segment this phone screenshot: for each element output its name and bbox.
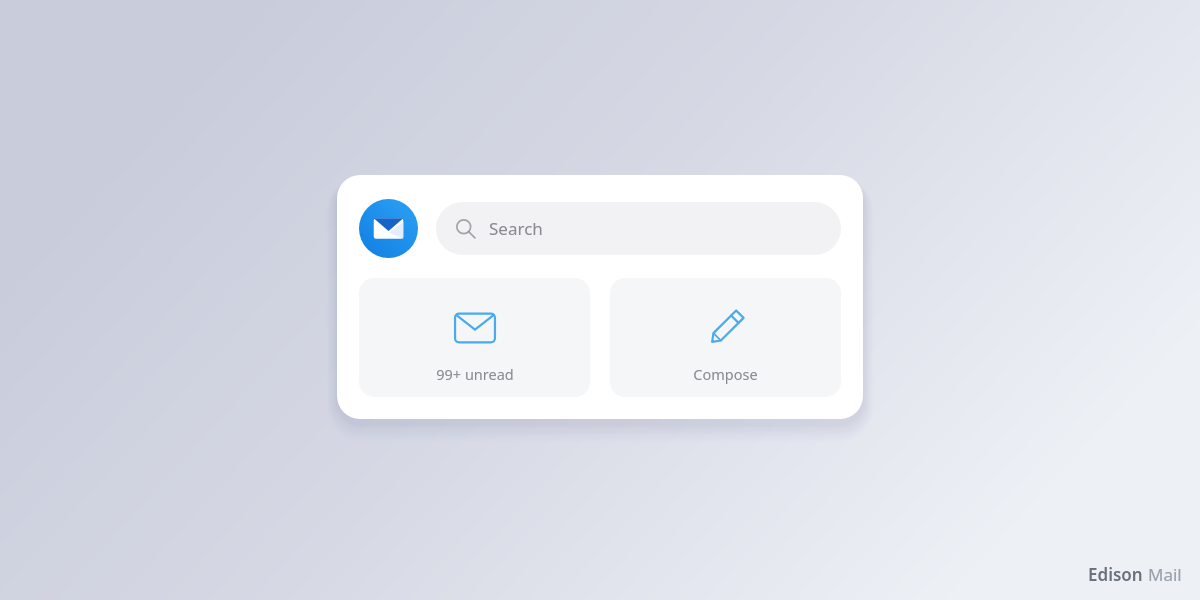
staticText: Search [489,217,543,240]
button[interactable]: Compose [610,278,841,397]
staticText: Compose [693,364,758,384]
staticText: Mail [1148,563,1182,586]
button[interactable]: Edison Mail [359,199,418,258]
button[interactable]: Search [436,202,841,255]
button[interactable]: 99+ unread [359,278,590,397]
staticText: Edison [1088,563,1143,586]
staticText: 99+ unread [436,364,514,384]
